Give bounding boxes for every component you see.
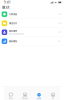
button[interactable]: 朋友推荐	[0, 28, 64, 37]
button[interactable]: 微信支付	[0, 19, 64, 28]
staticText: 周一	[58, 40, 62, 42]
button[interactable]: 我	[46, 86, 60, 100]
button[interactable]: 发现	[32, 86, 46, 100]
staticText: 微信	[9, 97, 13, 99]
staticText: 订阅消息	[9, 13, 17, 16]
staticText: 微信	[2, 5, 10, 9]
staticText: 服务通知	[9, 40, 17, 43]
staticText: 发现	[37, 97, 41, 99]
staticText: 你有2条新的消息	[9, 32, 24, 35]
button[interactable]: 微信	[4, 86, 18, 100]
staticText: 微信支付	[9, 22, 17, 25]
staticText: 9:41	[4, 0, 11, 4]
staticText: 我	[52, 97, 54, 99]
staticText: 昨天	[58, 22, 62, 24]
staticText: 朋友推荐	[9, 29, 17, 32]
button[interactable]: 服务通知	[0, 37, 64, 46]
staticText: 周二	[58, 31, 62, 33]
button[interactable]: 通讯录	[18, 86, 32, 100]
button[interactable]: 订阅消息	[0, 10, 64, 19]
staticText: 昨天	[58, 13, 62, 15]
staticText: 通讯录	[22, 97, 28, 99]
